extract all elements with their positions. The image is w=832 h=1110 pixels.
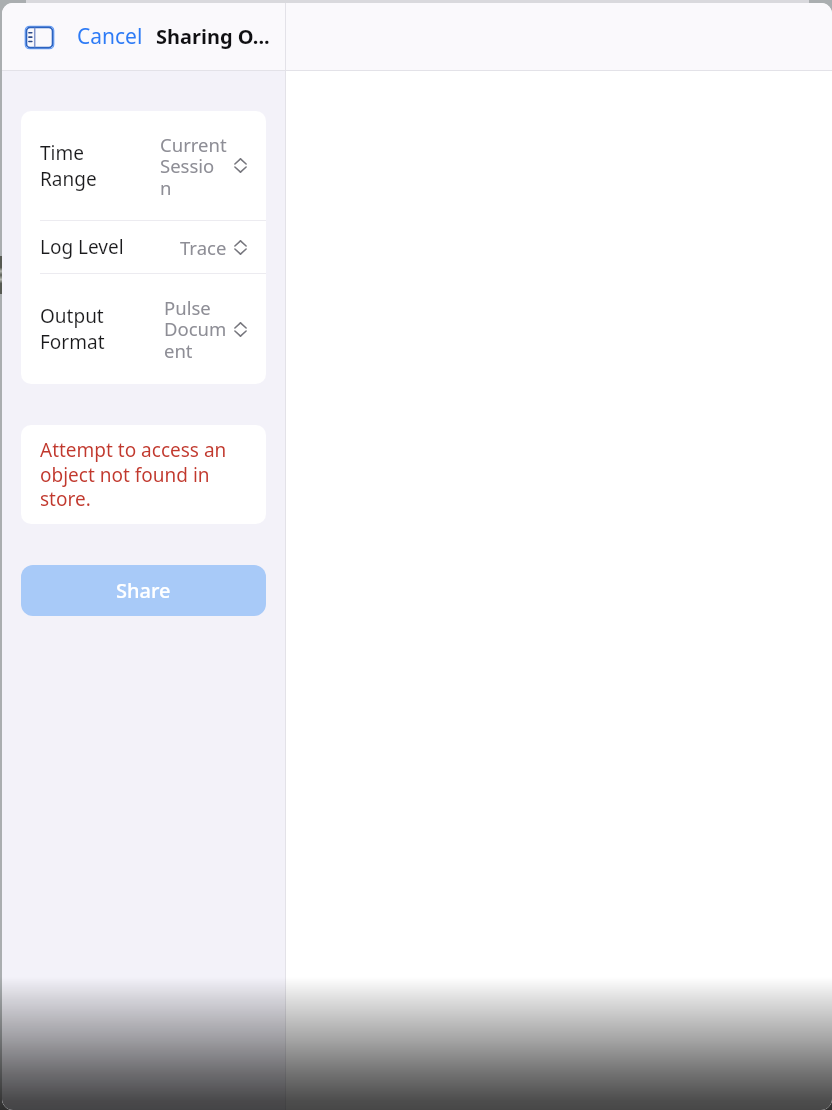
staticText: Sharing O... [156,23,270,50]
button[interactable]: Share [21,565,266,616]
staticText: Attempt to access an object not found in… [40,437,252,512]
button[interactable]: Log Level [21,221,266,273]
staticText: Output Format [40,303,105,355]
staticText: Trace [180,235,227,260]
staticText: Log Level [40,234,124,260]
button[interactable]: Cancel [77,3,143,70]
staticText: Time Range [40,140,97,192]
staticText: Current Sessio n [160,132,227,200]
staticText: Pulse Docum ent [164,295,227,363]
button[interactable]: Time Range [21,111,266,220]
staticText: Cancel [77,22,143,51]
staticText: Share [116,577,171,604]
button[interactable]: Output Format [21,274,266,384]
button[interactable]: Toggle sidebar [24,23,54,51]
